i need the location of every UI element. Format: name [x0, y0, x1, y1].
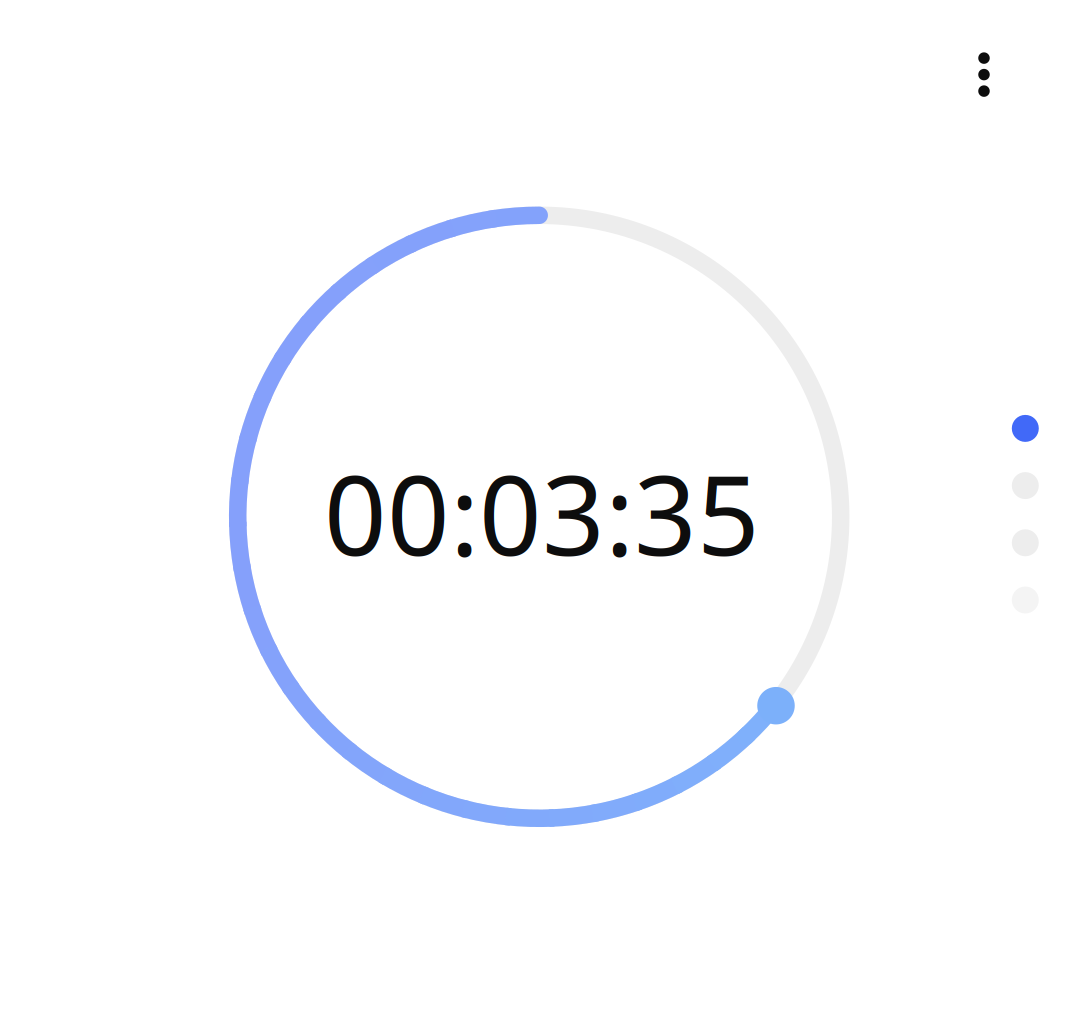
button[interactable]: Page 2 [1012, 472, 1039, 499]
button[interactable]: Page 1 [1012, 415, 1039, 442]
button[interactable]: More options [947, 38, 1021, 112]
button[interactable]: Page 4 [1012, 586, 1039, 613]
staticText: 00:03:35 [324, 440, 760, 586]
button[interactable]: Page 3 [1012, 529, 1039, 556]
button[interactable]: Adjust timer [757, 687, 795, 724]
